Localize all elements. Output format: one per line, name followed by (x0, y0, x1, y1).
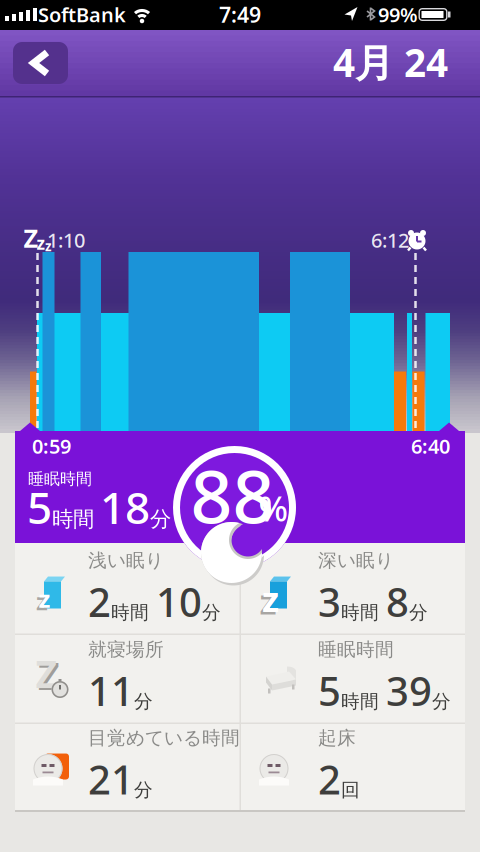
staticText: Z (35, 649, 57, 698)
staticText: 99% (378, 1, 418, 28)
staticText: 浅い眠り (88, 549, 164, 572)
staticText: % (258, 485, 288, 531)
staticText: 時間 (341, 601, 379, 624)
staticText: 分 (409, 601, 428, 624)
staticText: 18 (100, 478, 150, 536)
staticText: 8 (386, 575, 409, 628)
staticText: 5 (318, 664, 341, 717)
button[interactable]: Back (13, 42, 68, 84)
button[interactable]: 起床 (245, 722, 469, 810)
staticText: z (259, 578, 276, 624)
staticText: Z (38, 651, 60, 700)
staticText: z (36, 231, 45, 254)
staticText: 6:40 (411, 433, 450, 459)
button[interactable]: z (15, 544, 239, 632)
staticText: 5 (27, 478, 52, 536)
staticText: 3 (318, 575, 341, 628)
staticText: 回 (341, 779, 360, 801)
staticText: 1:10 (47, 227, 85, 253)
staticText: 時間 (52, 506, 94, 532)
staticText: 分 (150, 506, 171, 532)
button[interactable]: z (245, 544, 469, 632)
staticText: z (38, 583, 50, 614)
staticText: z (45, 237, 52, 255)
button[interactable]: 目覚めている時間 (15, 722, 239, 810)
staticText: 就寝場所 (88, 638, 164, 661)
staticText: 深い眠り (318, 549, 394, 572)
staticText: 時間 (111, 601, 149, 624)
staticText: z (262, 575, 279, 621)
staticText: 分 (202, 601, 221, 624)
staticText: 分 (134, 779, 153, 801)
button[interactable]: Z (15, 633, 239, 721)
staticText: 2 (318, 752, 341, 805)
staticText: z (36, 585, 48, 617)
staticText: 2 (88, 575, 111, 628)
staticText: 10 (156, 575, 202, 628)
staticText: 88 (190, 446, 274, 544)
staticText: SoftBank (38, 1, 126, 28)
staticText: 目覚めている時間 (88, 726, 240, 749)
staticText: Z (23, 221, 38, 255)
staticText: 39 (386, 664, 432, 717)
staticText: 分 (432, 690, 451, 713)
staticText: 睡眠時間 (28, 469, 92, 489)
staticText: 分 (134, 690, 153, 713)
staticText: 睡眠時間 (318, 638, 394, 661)
staticText: 0:59 (32, 433, 71, 459)
staticText: 6:12 (371, 227, 409, 253)
staticText: 時間 (341, 690, 379, 713)
staticText: 4月 24 (333, 36, 448, 88)
button[interactable]: 睡眠時間 (245, 633, 469, 721)
staticText: 起床 (318, 726, 356, 749)
staticText: 21 (88, 752, 134, 805)
staticText: 11 (88, 664, 134, 717)
staticText: 7:49 (219, 0, 261, 29)
